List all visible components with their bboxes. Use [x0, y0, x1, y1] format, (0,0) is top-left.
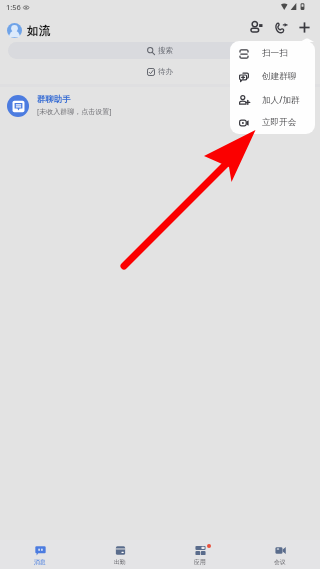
button[interactable]: 搜索	[8, 42, 312, 59]
staticText: 会议	[274, 558, 286, 565]
staticText: 加人/加群	[262, 94, 300, 106]
staticText: 搜索	[158, 46, 173, 55]
button[interactable]: Add contact	[245, 16, 267, 38]
button[interactable]: 应用	[160, 540, 240, 569]
button[interactable]: 扫一扫	[230, 42, 315, 65]
button[interactable]: 创建群聊	[230, 65, 315, 88]
button[interactable]: 群聊助手	[0, 87, 320, 124]
button[interactable]: 加人/加群	[230, 88, 315, 111]
button[interactable]: 消息	[0, 540, 80, 569]
button[interactable]: 出勤	[80, 540, 160, 569]
button[interactable]: 会议	[240, 540, 320, 569]
button[interactable]: Call	[269, 16, 291, 38]
staticText: 应用	[194, 558, 206, 565]
staticText: 出勤	[114, 558, 126, 565]
staticText: 消息	[34, 558, 46, 565]
staticText: 1:56	[6, 2, 21, 12]
button[interactable]: 待办	[8, 63, 312, 80]
staticText: [未收入群聊，点击设置]	[37, 107, 112, 117]
staticText: 扫一扫	[262, 48, 288, 59]
staticText: 群聊助手	[37, 94, 71, 104]
staticText: 待办	[158, 67, 173, 76]
staticText: 如流	[27, 24, 50, 38]
staticText: 立即开会	[262, 117, 297, 128]
button[interactable]: 立即开会	[230, 111, 315, 134]
staticText: 创建群聊	[262, 71, 297, 82]
button[interactable]: Add	[293, 16, 315, 38]
